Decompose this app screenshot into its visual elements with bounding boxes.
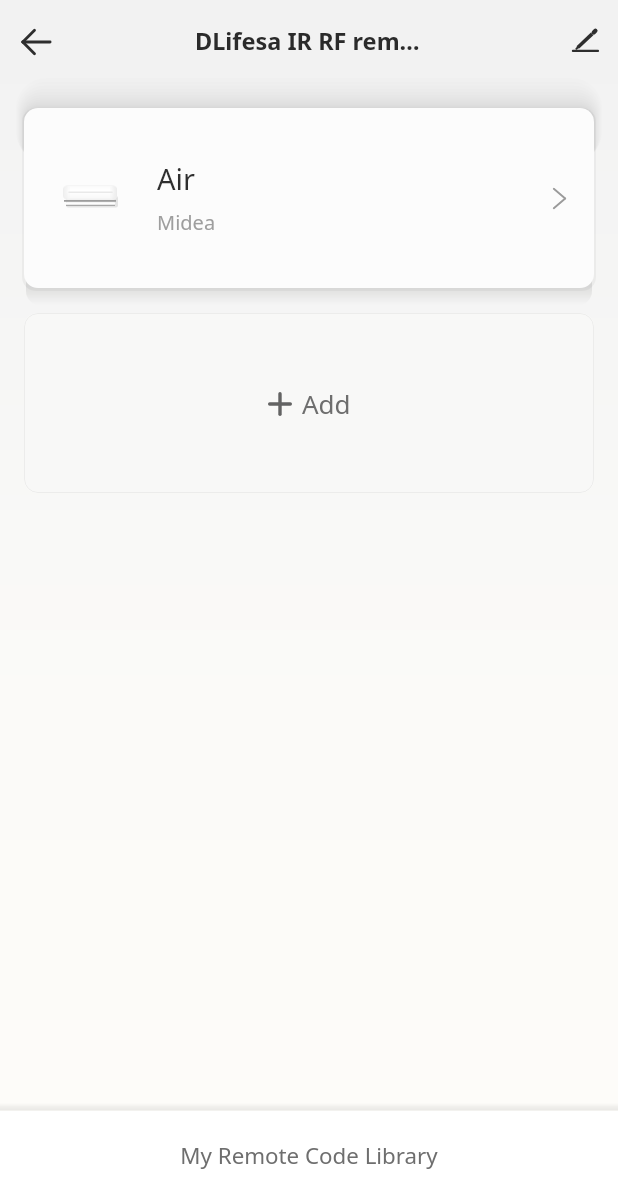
- staticText: My Remote Code Library: [180, 1140, 438, 1170]
- staticText: Air: [157, 159, 195, 198]
- button[interactable]: Add: [24, 313, 594, 493]
- staticText: DLifesa IR RF rem…: [195, 25, 420, 57]
- staticText: Add: [302, 386, 351, 421]
- button[interactable]: Edit: [557, 12, 613, 68]
- button[interactable]: My Remote Code Library: [0, 1111, 618, 1200]
- button[interactable]: Air: [24, 108, 594, 288]
- staticText: Midea: [157, 209, 216, 236]
- button[interactable]: Back: [6, 12, 66, 72]
